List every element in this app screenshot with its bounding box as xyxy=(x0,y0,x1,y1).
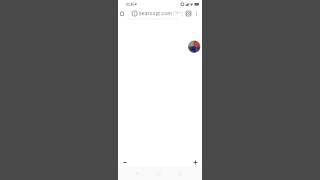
button[interactable]: Home xyxy=(117,8,127,18)
button[interactable]: Account xyxy=(188,41,200,53)
button[interactable]: Zoom out xyxy=(120,158,129,167)
staticText: 10:45 xyxy=(125,2,134,7)
button[interactable]: Zoom in xyxy=(191,158,200,167)
button[interactable]: Tabs xyxy=(184,8,193,18)
button[interactable]: Address bar xyxy=(127,8,184,18)
staticText: /?t=j xyxy=(173,10,183,17)
staticText: beatsxyz.com xyxy=(139,10,173,17)
button[interactable]: More options xyxy=(193,8,200,18)
